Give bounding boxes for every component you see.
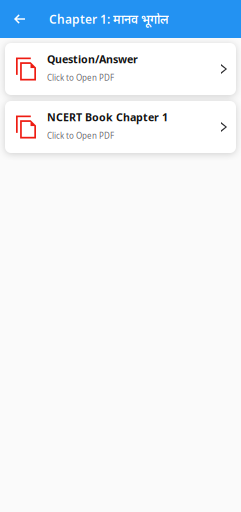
staticText: Question/Answer	[47, 52, 138, 66]
staticText: Click to Open PDF	[47, 130, 114, 141]
button[interactable]: Question/Answer	[5, 43, 236, 95]
staticText: Click to Open PDF	[47, 72, 114, 83]
button[interactable]: Back	[0, 3, 49, 34]
staticText: Chapter 1: मानव भूगोल	[49, 11, 169, 27]
button[interactable]: NCERT Book Chapter 1	[5, 101, 236, 153]
staticText: NCERT Book Chapter 1	[47, 110, 168, 124]
